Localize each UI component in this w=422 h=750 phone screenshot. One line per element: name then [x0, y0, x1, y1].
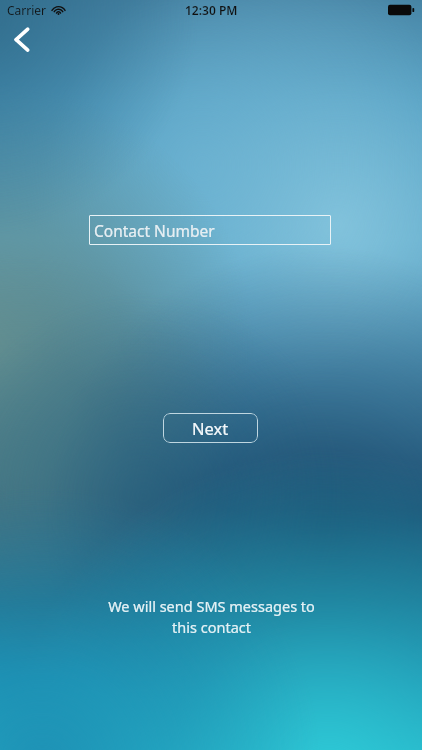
button[interactable]: Contact Number	[89, 215, 331, 245]
staticText: Carrier	[7, 2, 47, 18]
button[interactable]: Next	[163, 413, 258, 443]
staticText: Next	[192, 417, 229, 439]
button[interactable]: Back	[0, 22, 44, 66]
staticText: We will send SMS messages to this contac…	[108, 596, 315, 638]
staticText: 12:30 PM	[185, 2, 238, 18]
staticText: Contact Number	[94, 220, 215, 241]
